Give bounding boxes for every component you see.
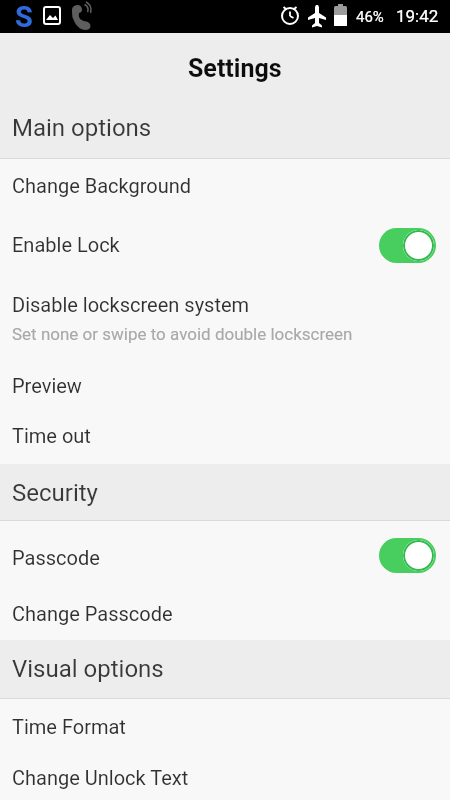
- staticText: Time out: [12, 424, 91, 447]
- staticText: Preview: [12, 374, 82, 397]
- button[interactable]: [379, 228, 436, 263]
- staticText: Change Unlock Text: [12, 766, 189, 789]
- staticText: Enable Lock: [12, 233, 120, 256]
- staticText: Disable lockscreen system: [12, 293, 250, 316]
- staticText: Main options: [12, 114, 152, 142]
- button[interactable]: [0, 586, 450, 640]
- button[interactable]: [0, 699, 450, 753]
- staticText: Settings: [188, 54, 282, 83]
- button[interactable]: [0, 274, 450, 360]
- staticText: Passcode: [12, 546, 100, 569]
- button[interactable]: [379, 538, 436, 573]
- button[interactable]: [0, 360, 450, 410]
- staticText: Set none or swipe to avoid double locksc…: [12, 324, 353, 344]
- staticText: Change Background: [12, 174, 192, 197]
- staticText: Visual options: [12, 655, 164, 683]
- staticText: 19:42: [396, 6, 439, 26]
- staticText: Security: [12, 479, 98, 507]
- button[interactable]: [0, 159, 450, 214]
- button[interactable]: [0, 753, 450, 800]
- staticText: 46%: [356, 8, 384, 26]
- staticText: S: [15, 0, 33, 31]
- button[interactable]: [0, 410, 450, 460]
- staticText: Time Format: [12, 715, 126, 738]
- staticText: Change Passcode: [12, 602, 173, 625]
